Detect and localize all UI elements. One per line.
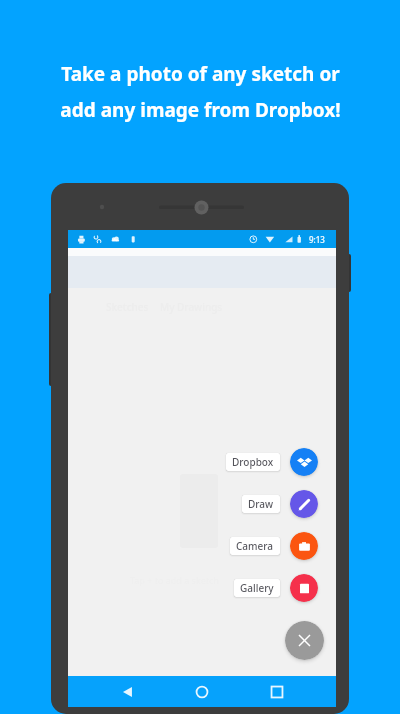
- staticText: Dropbox: [232, 455, 274, 469]
- button[interactable]: Draw: [68, 490, 318, 518]
- button[interactable]: Close menu: [285, 621, 324, 660]
- button[interactable]: Recents: [262, 677, 292, 707]
- staticText: Camera: [236, 539, 274, 553]
- button[interactable]: Camera: [68, 532, 318, 560]
- button[interactable]: Back: [113, 677, 143, 707]
- button[interactable]: Home: [187, 677, 217, 707]
- staticText: 9:13: [309, 234, 325, 245]
- button[interactable]: Dropbox: [68, 448, 318, 476]
- button[interactable]: Gallery: [68, 574, 318, 602]
- staticText: Draw: [248, 497, 274, 511]
- staticText: add any image from Dropbox!: [60, 97, 341, 123]
- staticText: Gallery: [240, 581, 274, 595]
- staticText: Take a photo of any sketch or: [61, 61, 340, 87]
